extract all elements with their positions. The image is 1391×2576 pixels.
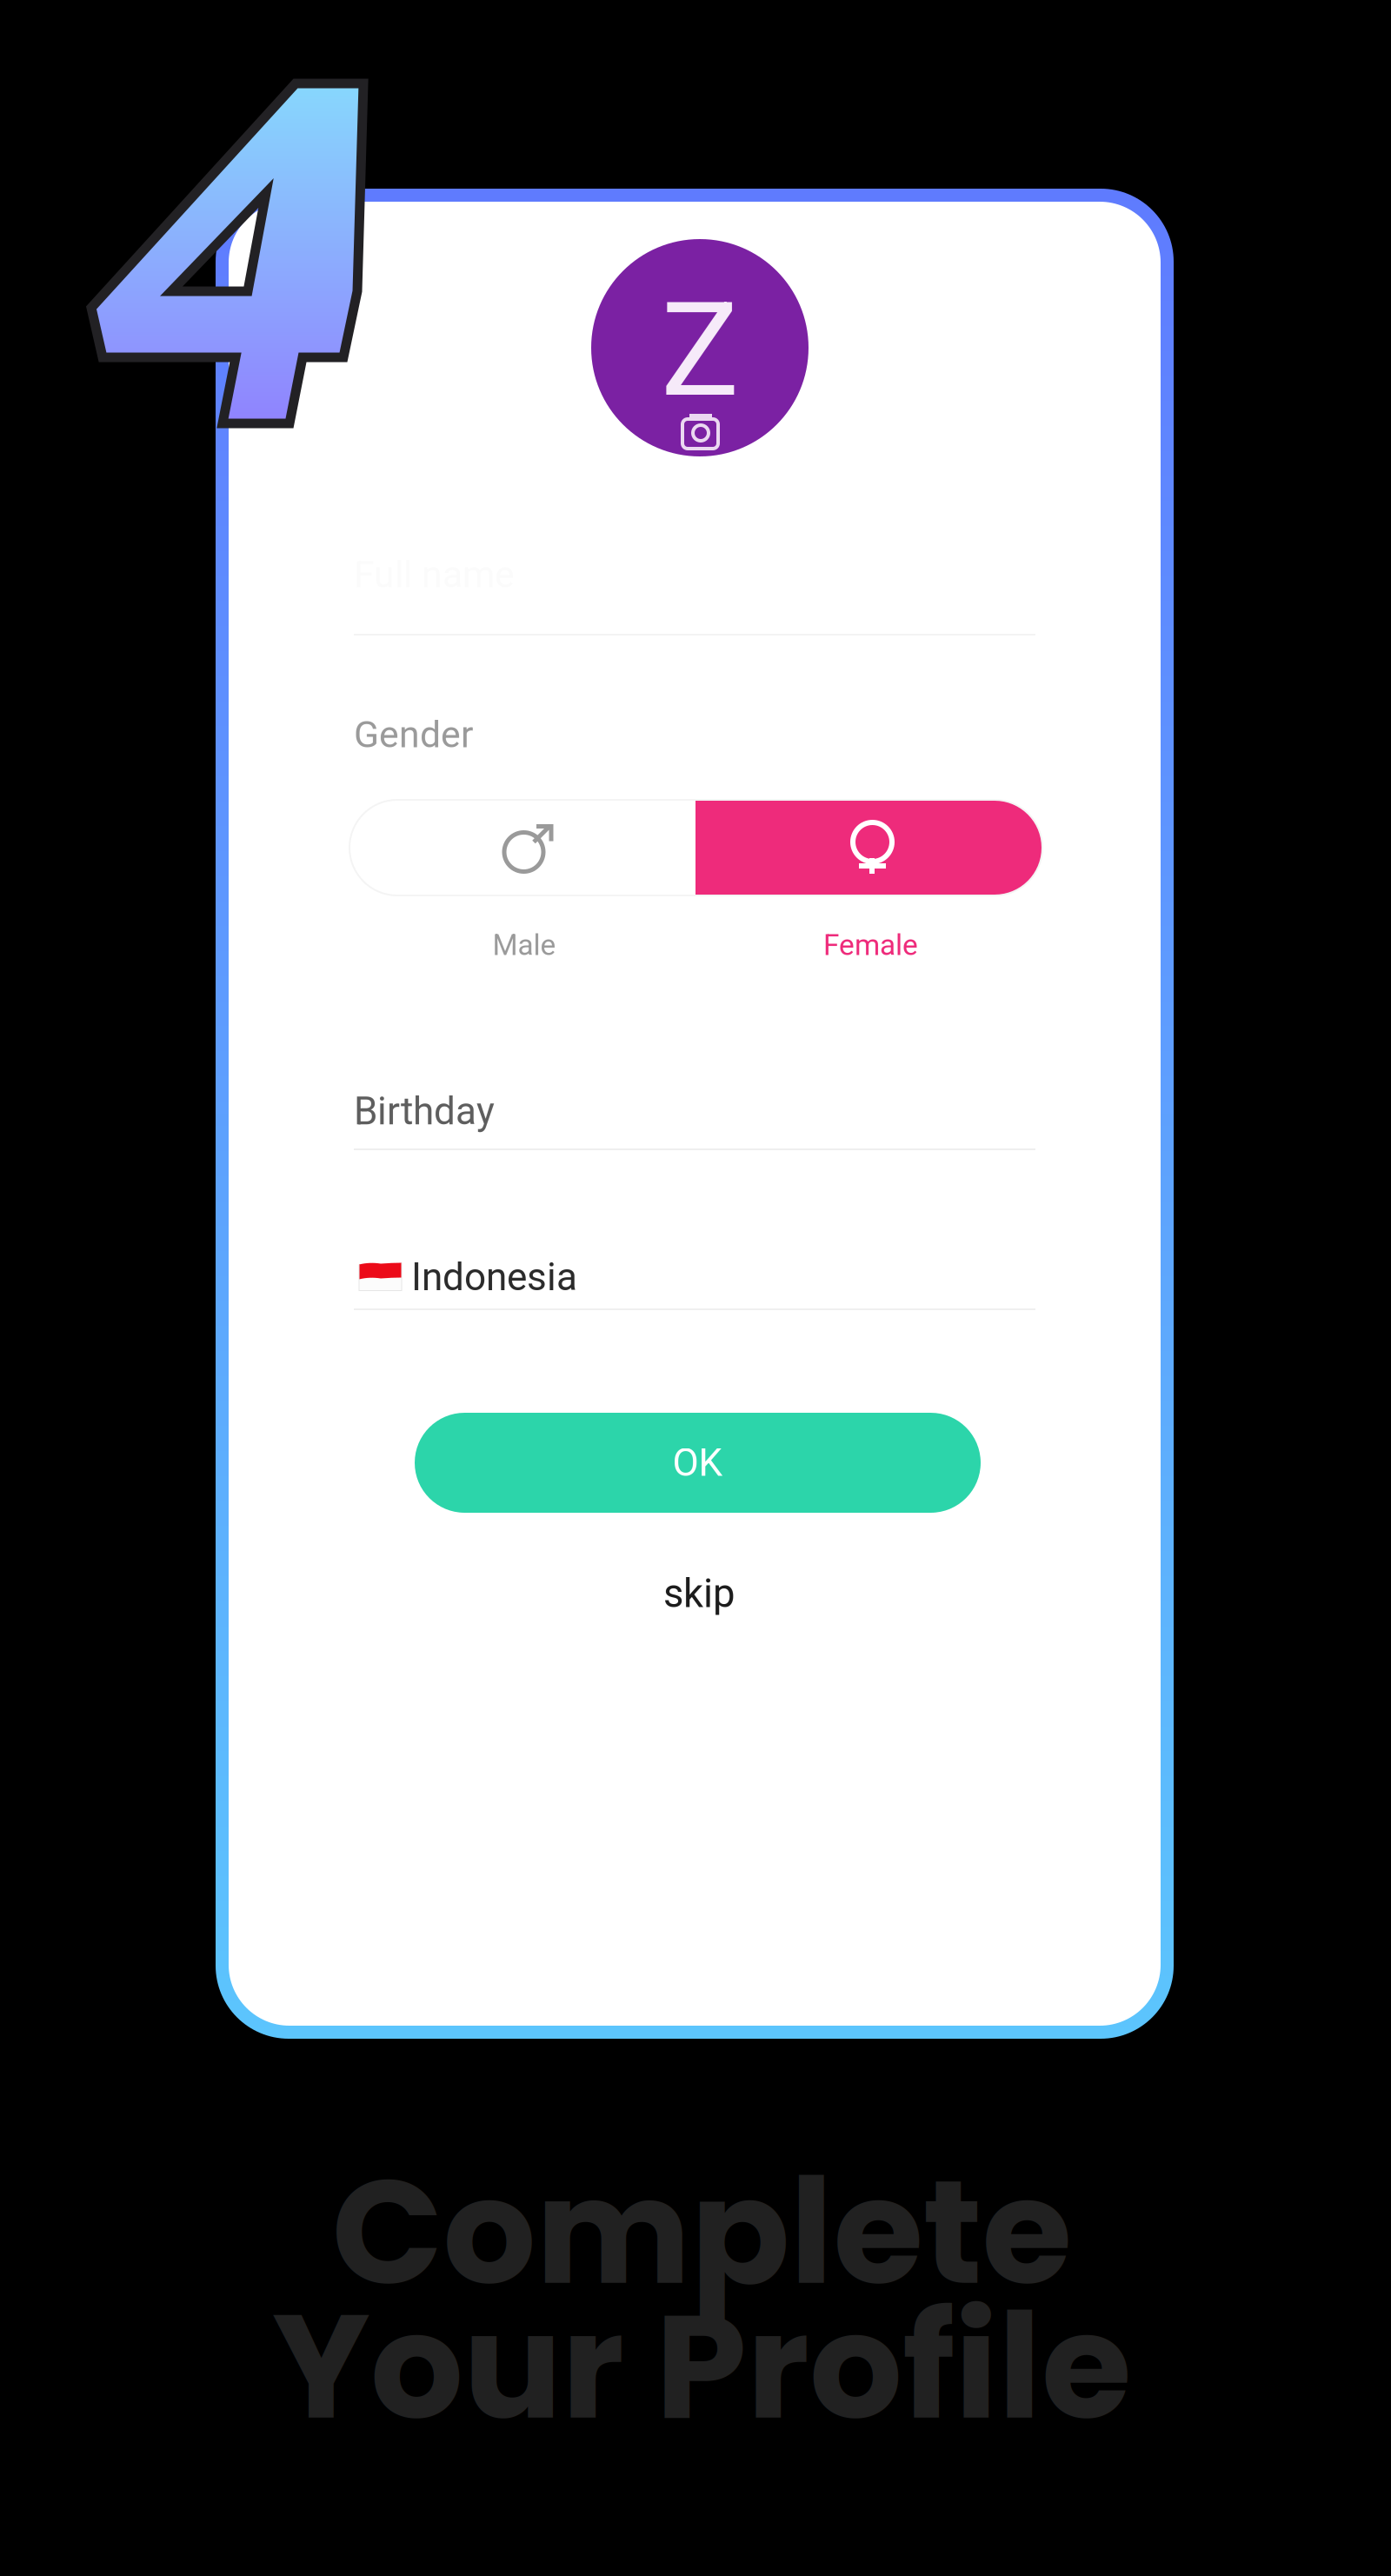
staticText: Z bbox=[661, 274, 739, 427]
staticText: Gender bbox=[354, 713, 473, 756]
staticText: Female bbox=[823, 928, 918, 962]
button[interactable]: Change profile photo bbox=[591, 239, 809, 456]
button[interactable]: OK bbox=[415, 1413, 981, 1513]
staticText: OK bbox=[672, 1440, 723, 1485]
staticText: Your Profile bbox=[272, 2264, 1131, 2469]
staticText: Birthday bbox=[354, 1089, 495, 1134]
button[interactable]: skip bbox=[612, 1567, 786, 1621]
button[interactable]: Male bbox=[349, 800, 695, 895]
staticText: skip bbox=[663, 1570, 735, 1617]
button[interactable]: Female bbox=[695, 800, 1042, 895]
staticText: Male bbox=[493, 928, 556, 962]
staticText: Complete bbox=[332, 2129, 1072, 2334]
staticText: Indonesia bbox=[411, 1255, 577, 1300]
